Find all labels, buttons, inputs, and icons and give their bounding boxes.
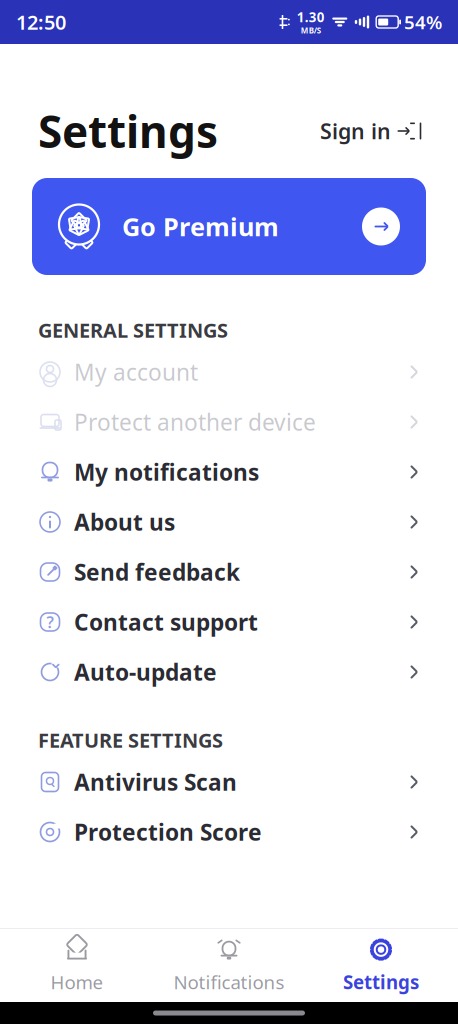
staticText: Settings (343, 970, 419, 994)
staticText: 1.30 (297, 8, 325, 26)
staticText: Go Premium (122, 210, 279, 243)
staticText: Sign in (320, 117, 391, 145)
button[interactable]: Go Premium (32, 178, 426, 275)
button[interactable]: Notifications (153, 930, 305, 1000)
staticText: MB/S (301, 25, 321, 36)
button[interactable]: Send feedback (0, 547, 458, 597)
button[interactable]: Protection Score (0, 807, 458, 857)
staticText: ? (46, 611, 53, 633)
button[interactable]: Sign in (316, 111, 420, 151)
staticText: Auto-update (74, 657, 217, 687)
button[interactable]: Home (1, 930, 153, 1000)
staticText: Protect another device (74, 407, 316, 437)
button[interactable]: Protect another device (0, 397, 458, 447)
button[interactable]: About us (0, 497, 458, 547)
staticText: Settings (38, 102, 218, 160)
staticText: Notifications (173, 970, 284, 994)
button[interactable]: ? (0, 597, 458, 647)
staticText: My notifications (74, 457, 259, 487)
staticText: 54% (404, 10, 442, 34)
staticText: Protection Score (74, 817, 262, 847)
staticText: Send feedback (74, 557, 240, 587)
button[interactable]: My account (0, 347, 458, 397)
button[interactable]: My notifications (0, 447, 458, 497)
staticText: 12:50 (16, 9, 66, 35)
staticText: GENERAL SETTINGS (38, 317, 228, 343)
staticText: Antivirus Scan (74, 767, 237, 797)
staticText: My account (74, 357, 198, 387)
staticText: FEATURE SETTINGS (38, 727, 223, 753)
button[interactable]: Antivirus Scan (0, 757, 458, 807)
staticText: About us (74, 507, 175, 537)
staticText: Home (50, 970, 103, 994)
button[interactable]: Auto-update (0, 647, 458, 697)
button[interactable]: Settings (305, 930, 457, 1000)
staticText: Contact support (74, 607, 258, 637)
